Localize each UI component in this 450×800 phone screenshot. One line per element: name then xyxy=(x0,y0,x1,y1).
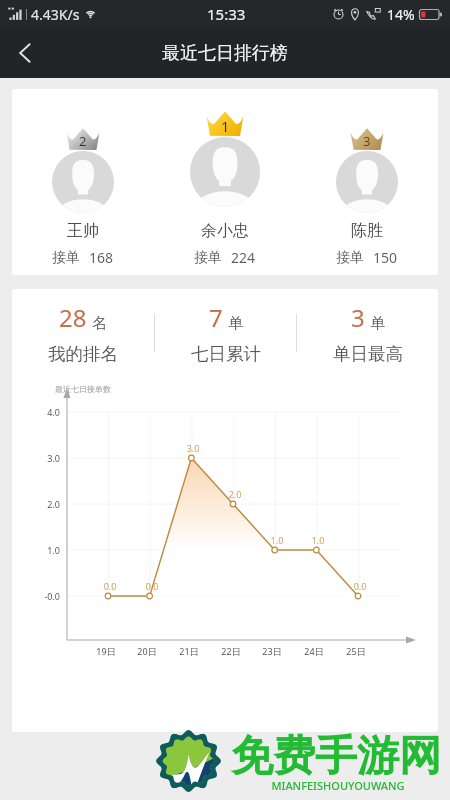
staticText: 0.0 xyxy=(139,580,165,592)
staticText: 我的排名 xyxy=(48,343,118,365)
button[interactable]: 2 xyxy=(12,89,154,275)
staticText: 七日累计 xyxy=(191,343,261,365)
staticText: 19日 xyxy=(91,645,121,657)
button[interactable]: 3 xyxy=(296,89,438,275)
staticText: 24日 xyxy=(299,645,329,657)
staticText: 免费手游网 xyxy=(231,730,441,783)
staticText: 15:33 xyxy=(207,4,246,24)
staticText: 168 xyxy=(89,248,114,267)
staticText: 224 xyxy=(231,248,256,267)
staticText: 1.0 xyxy=(305,534,331,546)
staticText: 20日 xyxy=(132,645,162,657)
staticText: 3.0 xyxy=(180,442,206,454)
staticText: 7 xyxy=(209,301,223,334)
staticText: 陈胜 xyxy=(351,221,383,241)
staticText: 1.0 xyxy=(35,544,60,556)
button[interactable]: 7 xyxy=(155,298,296,368)
staticText: 21日 xyxy=(174,645,204,657)
staticText: 23日 xyxy=(257,645,287,657)
staticText: 最近七日排行榜 xyxy=(162,42,288,65)
staticText: 单日最高 xyxy=(333,343,403,365)
staticText: 0.0 xyxy=(97,580,123,592)
staticText: MIANFEISHOUYOUWANG xyxy=(231,778,445,793)
staticText: 0.0 xyxy=(347,580,373,592)
staticText: 1.0 xyxy=(264,534,290,546)
staticText: 单 xyxy=(370,314,385,333)
button[interactable]: 3 xyxy=(297,298,438,368)
staticText: 3 xyxy=(351,301,365,334)
button[interactable]: 1 xyxy=(154,89,296,275)
staticText: 最近七日接单数 xyxy=(55,384,111,394)
staticText: 150 xyxy=(373,248,398,267)
staticText: 3.0 xyxy=(35,452,60,464)
staticText: 25日 xyxy=(341,645,371,657)
staticText: 22日 xyxy=(216,645,246,657)
staticText: 4.0 xyxy=(35,406,60,418)
button[interactable]: 28 xyxy=(12,298,154,368)
staticText: 接单 xyxy=(194,249,222,267)
staticText: -0.0 xyxy=(35,590,60,602)
staticText: 4.43K/s xyxy=(31,5,80,24)
staticText: 2.0 xyxy=(222,488,248,500)
staticText: 2 xyxy=(79,132,87,150)
staticText: 王帅 xyxy=(67,221,99,241)
staticText: 28 xyxy=(59,301,87,334)
staticText: 余小忠 xyxy=(201,221,249,241)
staticText: 2.0 xyxy=(35,498,60,510)
staticText: 14% xyxy=(387,5,415,24)
staticText: 接单 xyxy=(336,249,364,267)
staticText: 3 xyxy=(363,132,371,150)
staticText: 接单 xyxy=(52,249,80,267)
staticText: 单 xyxy=(228,314,243,333)
staticText: 名 xyxy=(92,314,107,333)
staticText: 1 xyxy=(221,116,230,136)
button[interactable]: Back xyxy=(0,29,48,77)
